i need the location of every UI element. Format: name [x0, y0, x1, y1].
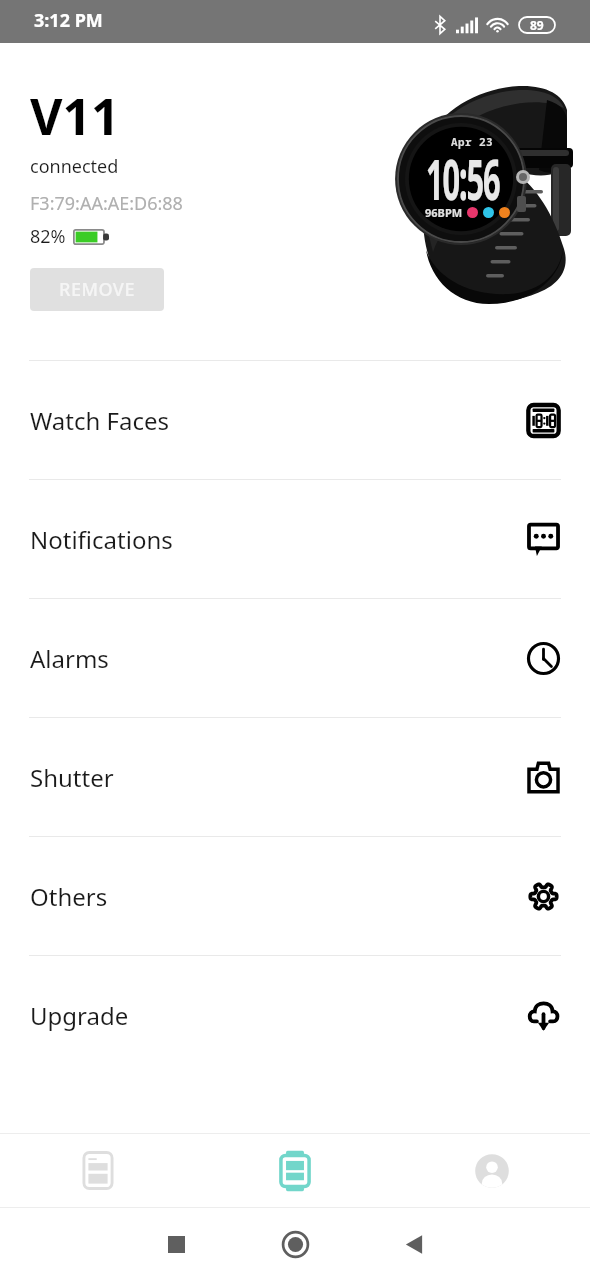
staticText: Others: [30, 880, 108, 913]
button[interactable]: Notifications: [0, 480, 590, 598]
button[interactable]: Alarms: [0, 599, 590, 717]
staticText: V11: [30, 82, 120, 150]
staticText: REMOVE: [59, 277, 135, 302]
button[interactable]: Recents: [148, 1216, 204, 1272]
staticText: Alarms: [30, 642, 109, 675]
staticText: Watch Faces: [30, 404, 170, 437]
button[interactable]: Home: [267, 1216, 323, 1272]
staticText: Shutter: [30, 761, 114, 794]
staticText: Upgrade: [30, 999, 129, 1032]
button[interactable]: Dashboard: [0, 1134, 196, 1207]
staticText: connected: [30, 154, 119, 179]
button[interactable]: Shutter: [0, 718, 590, 836]
staticText: F3:79:AA:AE:D6:88: [30, 191, 183, 216]
button[interactable]: REMOVE: [30, 268, 164, 311]
staticText: 3:12 PM: [34, 8, 103, 33]
staticText: 82%: [30, 224, 66, 249]
button[interactable]: Watch Faces: [0, 361, 590, 479]
staticText: Apr 23: [451, 134, 493, 149]
staticText: 89: [530, 17, 544, 33]
button[interactable]: Back: [386, 1216, 442, 1272]
button[interactable]: Profile: [393, 1134, 590, 1207]
staticText: 10:56: [426, 141, 500, 217]
button[interactable]: Device: [196, 1134, 393, 1207]
button[interactable]: Upgrade: [0, 956, 590, 1074]
button[interactable]: Others: [0, 837, 590, 955]
staticText: 96BPM: [425, 205, 463, 220]
staticText: Notifications: [30, 523, 173, 556]
